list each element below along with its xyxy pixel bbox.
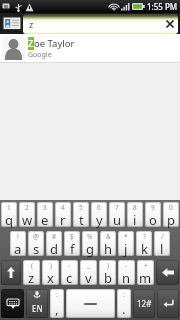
button[interactable]: 9 (145, 202, 161, 227)
button[interactable]: 12# (133, 289, 155, 318)
staticText: EN (32, 303, 43, 314)
staticText: & (106, 232, 111, 241)
staticText: 2 (25, 203, 29, 212)
staticText: b (104, 269, 112, 287)
staticText: j (124, 240, 128, 258)
staticText: s (33, 240, 40, 258)
staticText: * (124, 232, 128, 241)
staticText: 6 (97, 203, 101, 212)
button[interactable]: $ (64, 231, 80, 256)
staticText: q (5, 211, 13, 229)
staticText: Google (28, 50, 52, 60)
button[interactable]: Switch keyboard (1, 289, 24, 318)
button[interactable]: 5 (73, 202, 89, 227)
button[interactable]: 1 (1, 202, 17, 227)
staticText: m (139, 269, 152, 287)
button[interactable]: 7 (109, 202, 125, 227)
button[interactable]: % (82, 231, 98, 256)
button[interactable]: Contacts (1, 14, 23, 34)
staticText: 9 (151, 203, 155, 212)
button[interactable]: - (61, 260, 78, 285)
staticText: v (85, 269, 92, 287)
staticText: r (60, 211, 66, 229)
staticText: / (161, 232, 164, 241)
staticText: 3 (43, 203, 47, 212)
staticText: # (52, 232, 57, 241)
staticText: + (144, 261, 148, 270)
staticText: ? (143, 232, 146, 241)
button[interactable]: ? (136, 231, 152, 256)
staticText: t (79, 211, 84, 229)
button[interactable]: # (46, 231, 62, 256)
staticText: : (123, 290, 125, 299)
staticText: oe Taylor (34, 37, 75, 50)
staticText: 12# (137, 298, 152, 309)
staticText: 1:55 PM (147, 1, 178, 12)
button[interactable]: Clear text (162, 16, 178, 32)
staticText: : (56, 290, 58, 299)
button[interactable]: ! (10, 231, 26, 256)
staticText: c (66, 269, 73, 287)
staticText: @ (33, 232, 39, 241)
button[interactable]: : (50, 289, 64, 318)
staticText: $ (70, 232, 74, 241)
staticText: 1 (7, 203, 11, 212)
button[interactable]: + (137, 260, 154, 285)
staticText: ! (17, 232, 19, 241)
staticText: f (70, 240, 75, 258)
button[interactable]: 2 (19, 202, 35, 227)
button[interactable]: ) (99, 260, 116, 285)
staticText: _ (87, 261, 90, 270)
button[interactable]: @ (28, 231, 44, 256)
staticText: ) (107, 261, 109, 270)
button[interactable]: / (154, 231, 170, 256)
button[interactable]: & (100, 231, 116, 256)
button[interactable]: Shift (1, 260, 21, 285)
staticText: g (86, 240, 94, 258)
staticText: z (29, 18, 34, 30)
staticText: d (50, 240, 58, 258)
staticText: e (41, 211, 49, 229)
staticText: w (22, 211, 33, 229)
button[interactable]: EN (26, 289, 48, 318)
staticText: 8 (133, 203, 137, 212)
button[interactable]: 4 (55, 202, 71, 227)
button[interactable]: Backspace (156, 260, 179, 285)
button[interactable]: 3 (37, 202, 53, 227)
staticText: . (122, 300, 126, 318)
staticText: l (160, 240, 164, 258)
staticText: , (55, 300, 59, 318)
button[interactable]: * (118, 231, 134, 256)
staticText: u (113, 211, 122, 229)
staticText: - (125, 261, 128, 270)
staticText: z (28, 269, 35, 287)
staticText: ) (50, 261, 52, 270)
staticText: i (133, 211, 137, 229)
button[interactable]: Z (0, 34, 180, 62)
button[interactable]: ) (42, 260, 59, 285)
staticText: h (104, 240, 113, 258)
staticText: a (14, 240, 22, 258)
staticText: - (68, 261, 71, 270)
staticText: n (122, 269, 131, 287)
staticText: 7 (115, 203, 119, 212)
button[interactable]: - (118, 260, 135, 285)
staticText: % (87, 232, 93, 241)
staticText: x (47, 269, 54, 287)
button[interactable]: 6 (91, 202, 107, 227)
button[interactable]: 8 (127, 202, 143, 227)
staticText: p (167, 211, 175, 229)
button[interactable]: 0 (163, 202, 179, 227)
button[interactable]: z (23, 14, 178, 34)
staticText: Z (28, 37, 34, 50)
button[interactable]: _ (80, 260, 97, 285)
staticText: 4 (61, 203, 65, 212)
staticText: 5 (79, 203, 83, 212)
button[interactable]: ( (23, 260, 40, 285)
staticText: ( (31, 261, 33, 270)
button[interactable]: Space (66, 289, 115, 318)
button[interactable]: Enter (157, 289, 179, 318)
staticText: k (141, 240, 148, 258)
staticText: y (96, 211, 103, 229)
button[interactable]: : (117, 289, 131, 318)
